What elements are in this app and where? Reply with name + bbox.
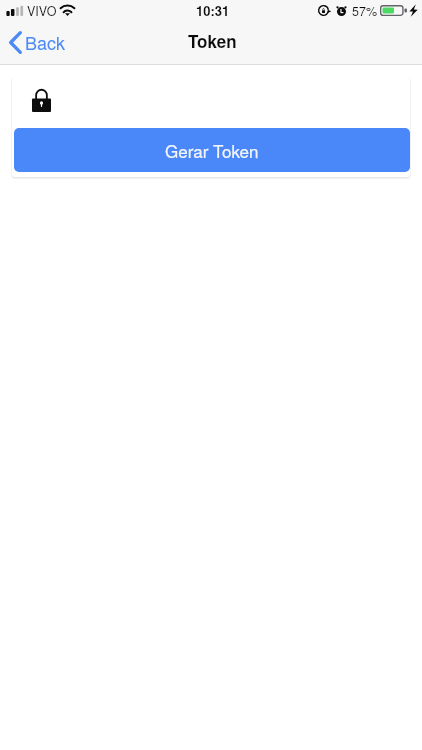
staticText: 57%	[352, 2, 378, 20]
staticText: Back	[25, 29, 66, 55]
staticText: VIVO	[27, 2, 57, 20]
button[interactable]: Back	[3, 26, 76, 65]
staticText: Token	[188, 29, 237, 53]
other: Secure token	[32, 88, 51, 112]
staticText: Gerar Token	[165, 138, 259, 162]
button[interactable]: Gerar Token	[14, 128, 410, 172]
staticText: 10:31	[196, 1, 230, 20]
